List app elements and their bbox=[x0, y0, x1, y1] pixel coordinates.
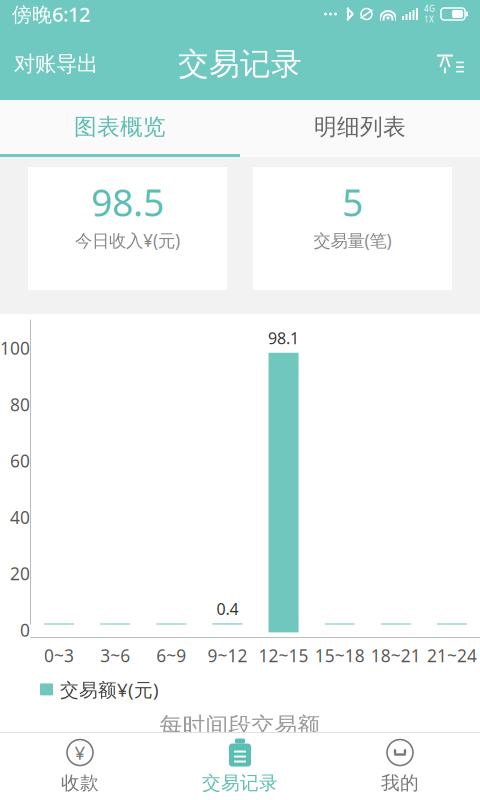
staticText: ¥ bbox=[74, 740, 85, 765]
button[interactable]: ¥ bbox=[0, 733, 160, 800]
staticText: 12~15 bbox=[259, 644, 309, 667]
staticText: 傍晚6:12 bbox=[12, 1, 90, 27]
staticText: 图表概览 bbox=[74, 113, 166, 141]
staticText: 明细列表 bbox=[314, 113, 406, 141]
button[interactable]: 交易记录 bbox=[160, 733, 320, 800]
staticText: 5 bbox=[342, 177, 363, 227]
staticText: 今日收入¥(元) bbox=[75, 229, 180, 252]
button[interactable]: 明细列表 bbox=[240, 100, 480, 157]
staticText: 交易记录 bbox=[178, 45, 302, 83]
staticText: 我的 bbox=[381, 771, 419, 794]
staticText: 3~6 bbox=[100, 644, 130, 667]
staticText: 98.5 bbox=[91, 177, 164, 227]
staticText: 9~12 bbox=[207, 644, 247, 667]
staticText: 0~3 bbox=[44, 644, 74, 667]
staticText: 21~24 bbox=[427, 644, 477, 667]
staticText: 15~18 bbox=[315, 644, 365, 667]
button[interactable]: 筛选 bbox=[422, 37, 480, 91]
staticText: 交易额¥(元) bbox=[60, 677, 159, 702]
staticText: 6~9 bbox=[156, 644, 186, 667]
staticText: 收款 bbox=[61, 771, 99, 794]
staticText: 每时间段交易额 bbox=[159, 712, 320, 740]
staticText: 80 bbox=[10, 393, 30, 416]
button[interactable]: 对账导出 bbox=[0, 37, 112, 91]
staticText: 对账导出 bbox=[14, 51, 98, 77]
staticText: 交易量(笔) bbox=[313, 229, 391, 252]
staticText: 交易记录 bbox=[202, 771, 278, 794]
staticText: 98.1 bbox=[268, 327, 299, 349]
button[interactable]: 图表概览 bbox=[0, 100, 240, 157]
staticText: 18~21 bbox=[371, 644, 421, 667]
staticText: 40 bbox=[10, 506, 30, 529]
staticText: 60 bbox=[10, 449, 30, 472]
staticText: 100 bbox=[0, 336, 30, 359]
button[interactable]: 我的 bbox=[320, 733, 480, 800]
staticText: 4G 1X bbox=[424, 3, 435, 25]
staticText: 0.4 bbox=[216, 598, 238, 619]
staticText: 0 bbox=[20, 618, 30, 641]
staticText: 20 bbox=[10, 562, 30, 585]
